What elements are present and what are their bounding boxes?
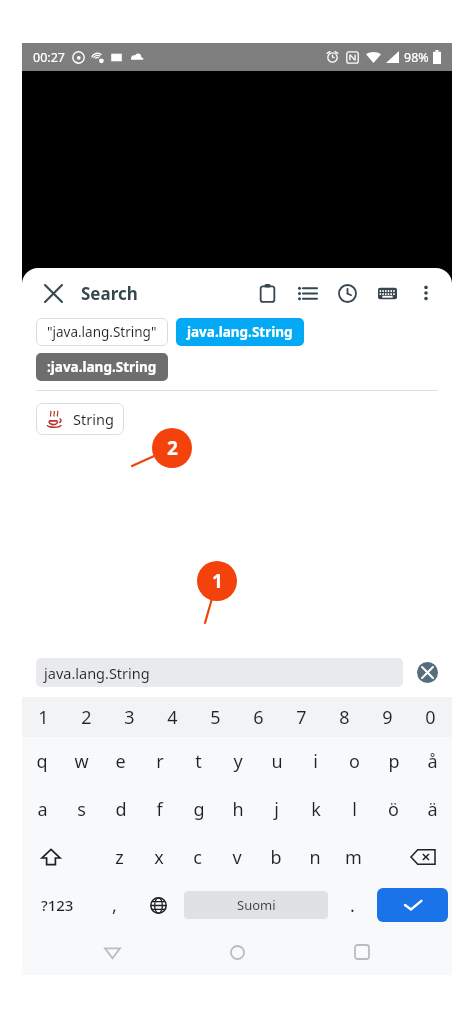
button[interactable]: e [101, 737, 140, 785]
staticText: w [74, 749, 89, 774]
staticText: e [115, 749, 126, 774]
button[interactable]: Shift [22, 833, 80, 881]
staticText: j [274, 797, 279, 822]
button[interactable]: v [217, 833, 256, 881]
button[interactable]: g [179, 785, 218, 833]
staticText: g [193, 797, 205, 822]
staticText: :java.lang.String [47, 358, 157, 376]
staticText: 5 [210, 705, 221, 730]
button[interactable]: 4 [151, 697, 194, 737]
button[interactable]: String [36, 403, 124, 435]
staticText: 9 [382, 705, 393, 730]
button[interactable]: n [295, 833, 334, 881]
button[interactable]: y [218, 737, 257, 785]
staticText: a [37, 797, 48, 822]
button[interactable]: Clear search [412, 657, 442, 687]
button[interactable]: 3 [108, 697, 151, 737]
button[interactable]: q [22, 737, 62, 785]
button[interactable]: Home [215, 930, 259, 974]
button[interactable]: Paste from clipboard [252, 278, 282, 308]
button[interactable]: Filters [292, 278, 322, 308]
button[interactable]: a [22, 785, 62, 833]
button[interactable]: More options [410, 277, 442, 309]
button[interactable]: m [334, 833, 373, 881]
staticText: c [193, 845, 202, 870]
button[interactable]: "java.lang.String" [36, 318, 168, 346]
button[interactable]: r [140, 737, 179, 785]
button[interactable]: 6 [237, 697, 280, 737]
button[interactable]: 2 [65, 697, 108, 737]
button[interactable]: f [140, 785, 179, 833]
staticText: h [232, 797, 244, 822]
staticText: t [195, 749, 202, 774]
staticText: n [309, 845, 321, 870]
button[interactable]: j [257, 785, 296, 833]
button[interactable]: Back [90, 930, 134, 974]
button[interactable]: d [101, 785, 140, 833]
button[interactable]: 9 [366, 697, 409, 737]
button[interactable]: å [413, 737, 452, 785]
staticText: b [270, 845, 282, 870]
staticText: 98% [404, 49, 429, 66]
button[interactable]: Backspace [393, 833, 452, 881]
staticText: y [233, 749, 243, 774]
button[interactable]: c [178, 833, 217, 881]
button[interactable]: o [335, 737, 374, 785]
staticText: java.lang.String [187, 323, 293, 341]
button[interactable]: t [179, 737, 218, 785]
button[interactable]: b [256, 833, 295, 881]
staticText: k [311, 797, 321, 822]
button[interactable]: 7 [280, 697, 323, 737]
button[interactable]: ö [374, 785, 413, 833]
staticText: p [388, 749, 400, 774]
button[interactable]: 8 [323, 697, 366, 737]
button[interactable]: Suomi [184, 891, 328, 919]
staticText: 7 [296, 705, 307, 730]
staticText: String [73, 409, 114, 429]
button[interactable]: ?123 [22, 881, 93, 929]
button[interactable]: u [257, 737, 296, 785]
staticText: z [115, 845, 124, 870]
button[interactable]: 1 [22, 697, 65, 737]
staticText: s [77, 797, 86, 822]
staticText: 6 [253, 705, 264, 730]
staticText: u [271, 749, 283, 774]
staticText: d [115, 797, 127, 822]
staticText: 3 [124, 705, 135, 730]
staticText: 2 [81, 705, 92, 730]
staticText: 0 [425, 705, 436, 730]
button[interactable]: java.lang.String [36, 658, 403, 687]
button[interactable]: . [331, 881, 373, 929]
button[interactable]: s [62, 785, 101, 833]
staticText: f [156, 797, 163, 822]
staticText: i [313, 749, 318, 774]
button[interactable]: p [374, 737, 413, 785]
staticText: ö [388, 797, 399, 822]
button[interactable]: java.lang.String [176, 318, 304, 346]
button[interactable]: Recent searches [332, 278, 362, 308]
button[interactable]: i [296, 737, 335, 785]
staticText: v [232, 845, 242, 870]
button[interactable]: x [139, 833, 178, 881]
staticText: q [36, 749, 48, 774]
button[interactable]: Keyboard [372, 278, 402, 308]
button[interactable]: 5 [194, 697, 237, 737]
staticText: l [352, 797, 357, 822]
staticText: Suomi [237, 896, 276, 914]
button[interactable]: :java.lang.String [36, 353, 168, 381]
button[interactable]: Enter [377, 888, 448, 922]
button[interactable]: Recent apps [340, 930, 384, 974]
staticText: 00:27 [33, 49, 65, 66]
staticText: 4 [167, 705, 178, 730]
button[interactable]: w [62, 737, 101, 785]
button[interactable]: ä [413, 785, 452, 833]
button[interactable]: l [335, 785, 374, 833]
button[interactable]: Change language [135, 881, 181, 929]
button[interactable]: , [93, 881, 135, 929]
button[interactable]: 0 [409, 697, 452, 737]
button[interactable]: z [100, 833, 139, 881]
staticText: . [350, 893, 355, 918]
button[interactable]: h [218, 785, 257, 833]
button[interactable]: Close [36, 276, 70, 310]
button[interactable]: k [296, 785, 335, 833]
